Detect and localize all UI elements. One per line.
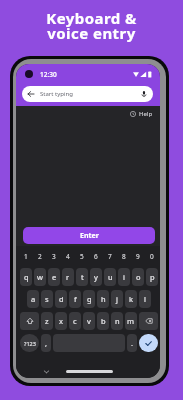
staticText: 1 bbox=[24, 252, 28, 261]
staticText: q bbox=[24, 272, 29, 282]
staticText: i bbox=[123, 272, 125, 282]
staticText: Start typing bbox=[40, 90, 73, 98]
button[interactable]: n bbox=[111, 312, 123, 330]
staticText: v bbox=[87, 316, 91, 326]
staticText: t bbox=[81, 272, 84, 282]
staticText: y bbox=[94, 272, 98, 282]
button[interactable]: a bbox=[27, 290, 39, 308]
button[interactable]: f bbox=[69, 290, 81, 308]
staticText: 0 bbox=[150, 252, 154, 261]
staticText: j bbox=[116, 294, 118, 304]
button[interactable]: Enter bbox=[139, 334, 158, 352]
staticText: f bbox=[74, 294, 77, 304]
staticText: m bbox=[127, 316, 135, 326]
other: Help bbox=[130, 111, 136, 117]
button[interactable]: e bbox=[48, 268, 60, 286]
button[interactable]: i bbox=[118, 268, 130, 286]
button[interactable]: o bbox=[132, 268, 144, 286]
staticText: h bbox=[101, 294, 106, 304]
staticText: Keyboard & voice entry bbox=[0, 8, 183, 43]
button[interactable]: r bbox=[62, 268, 74, 286]
staticText: c bbox=[73, 316, 77, 326]
button[interactable]: b bbox=[97, 312, 109, 330]
staticText: l bbox=[144, 294, 146, 304]
staticText: , bbox=[45, 338, 48, 348]
staticText: s bbox=[45, 294, 49, 304]
button[interactable]: t bbox=[76, 268, 88, 286]
staticText: d bbox=[59, 294, 64, 304]
button[interactable]: Help bbox=[128, 108, 155, 120]
button[interactable]: g bbox=[83, 290, 95, 308]
staticText: Help bbox=[139, 110, 153, 118]
button[interactable]: Shift bbox=[20, 312, 39, 330]
staticText: . bbox=[131, 338, 134, 348]
button[interactable]: h bbox=[97, 290, 109, 308]
button[interactable]: Enter bbox=[23, 227, 155, 244]
button[interactable]: s bbox=[41, 290, 53, 308]
staticText: ?123 bbox=[24, 340, 36, 347]
staticText: 5 bbox=[80, 252, 84, 261]
staticText: o bbox=[136, 272, 141, 282]
staticText: Enter bbox=[80, 231, 99, 241]
staticText: b bbox=[101, 316, 106, 326]
button[interactable]: q bbox=[20, 268, 32, 286]
button[interactable]: j bbox=[111, 290, 123, 308]
button[interactable]: c bbox=[69, 312, 81, 330]
button[interactable]: v bbox=[83, 312, 95, 330]
button[interactable]: Hide keyboard bbox=[41, 366, 52, 377]
staticText: w bbox=[37, 272, 43, 282]
staticText: 9 bbox=[136, 252, 140, 261]
button[interactable]: k bbox=[125, 290, 137, 308]
button[interactable]: m bbox=[125, 312, 137, 330]
staticText: n bbox=[115, 316, 120, 326]
button[interactable]: Back bbox=[22, 86, 153, 102]
button[interactable]: ?123 bbox=[20, 334, 39, 352]
staticText: e bbox=[52, 272, 57, 282]
staticText: 2 bbox=[38, 252, 42, 261]
button[interactable]: . bbox=[127, 334, 137, 352]
button[interactable]: p bbox=[146, 268, 158, 286]
staticText: a bbox=[31, 294, 36, 304]
staticText: g bbox=[87, 294, 92, 304]
other: Voice input bbox=[140, 90, 148, 98]
staticText: u bbox=[108, 272, 113, 282]
button[interactable]: l bbox=[139, 290, 151, 308]
staticText: 4 bbox=[66, 252, 70, 261]
other: Back bbox=[27, 90, 35, 98]
button[interactable]: x bbox=[55, 312, 67, 330]
staticText: r bbox=[66, 272, 70, 282]
staticText: 3 bbox=[52, 252, 56, 261]
staticText: 6 bbox=[94, 252, 98, 261]
staticText: k bbox=[129, 294, 134, 304]
staticText: 8 bbox=[122, 252, 126, 261]
button[interactable]: u bbox=[104, 268, 116, 286]
staticText: 12:30 bbox=[40, 70, 57, 79]
button[interactable]: z bbox=[41, 312, 53, 330]
button[interactable]: y bbox=[90, 268, 102, 286]
staticText: z bbox=[45, 316, 49, 326]
button[interactable]: , bbox=[41, 334, 51, 352]
staticText: x bbox=[59, 316, 63, 326]
button[interactable]: d bbox=[55, 290, 67, 308]
button[interactable]: Backspace bbox=[139, 312, 158, 330]
staticText: p bbox=[150, 272, 155, 282]
staticText: 7 bbox=[108, 252, 112, 261]
button[interactable]: w bbox=[34, 268, 46, 286]
